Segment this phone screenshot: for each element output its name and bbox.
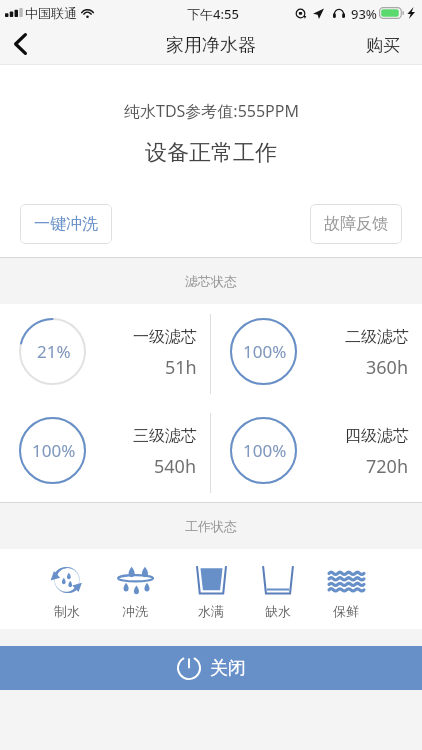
staticText: 滤芯状态	[185, 273, 237, 289]
staticText: 51h	[165, 355, 197, 380]
staticText: 一键冲洗	[34, 214, 98, 234]
staticText: 720h	[366, 454, 409, 479]
staticText: 纯水TDS参考值:555PPM	[124, 100, 299, 122]
staticText: 缺水	[265, 603, 291, 619]
staticText: 家用净水器	[166, 34, 256, 57]
button[interactable]: Back	[0, 26, 40, 64]
button[interactable]: 100%	[211, 304, 422, 403]
button[interactable]: 缺水	[257, 555, 299, 623]
button[interactable]: 一键冲洗	[20, 204, 112, 244]
button[interactable]: 购买	[366, 35, 400, 56]
button[interactable]: 21%	[0, 304, 210, 403]
button[interactable]: 制水	[46, 555, 88, 623]
staticText: 360h	[366, 355, 409, 380]
button[interactable]: 冲洗	[114, 555, 156, 623]
staticText: 设备正常工作	[145, 139, 277, 167]
staticText: 三级滤芯	[133, 426, 197, 446]
button[interactable]: 100%	[0, 403, 210, 502]
staticText: 保鲜	[333, 603, 359, 619]
staticText: 21%	[37, 340, 71, 363]
button[interactable]: 关闭	[0, 646, 422, 690]
staticText: 水满	[198, 603, 224, 619]
staticText: 制水	[54, 603, 80, 619]
staticText: 一级滤芯	[133, 327, 197, 347]
staticText: 关闭	[210, 657, 246, 680]
staticText: 下午4:55	[187, 5, 239, 23]
staticText: 100%	[32, 439, 76, 462]
button[interactable]: 故障反馈	[310, 204, 402, 244]
staticText: 冲洗	[122, 603, 148, 619]
staticText: 中国联通	[25, 5, 77, 21]
staticText: 100%	[243, 340, 287, 363]
staticText: 93%	[351, 5, 377, 23]
staticText: 四级滤芯	[345, 426, 409, 446]
staticText: 540h	[154, 454, 197, 479]
staticText: 工作状态	[185, 518, 237, 534]
staticText: 购买	[366, 35, 400, 56]
staticText: 二级滤芯	[345, 327, 409, 347]
staticText: 100%	[243, 439, 287, 462]
button[interactable]: 100%	[211, 403, 422, 502]
button[interactable]: 保鲜	[325, 555, 367, 623]
button[interactable]: 水满	[190, 555, 232, 623]
staticText: 故障反馈	[324, 214, 388, 234]
